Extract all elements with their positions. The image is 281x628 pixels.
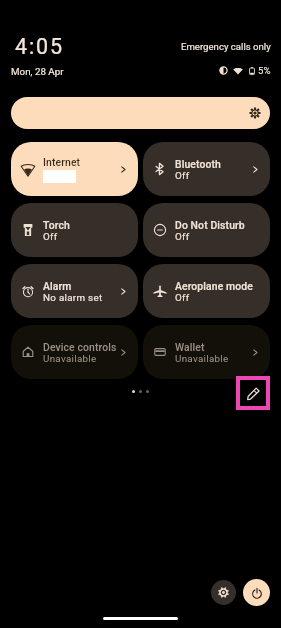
staticText: Emergency calls only [181, 41, 271, 52]
staticText: Off [175, 231, 190, 242]
staticText: Off [175, 292, 190, 303]
button[interactable]: Wallet [143, 325, 270, 379]
staticText: Do Not Disturb [175, 219, 245, 231]
button[interactable]: Bluetooth [143, 142, 270, 196]
button[interactable]: Device controls [11, 325, 138, 379]
button[interactable]: Power [243, 579, 270, 606]
staticText: Wallet [175, 341, 205, 353]
staticText: Mon, 28 Apr [11, 66, 64, 77]
button[interactable]: Edit tiles [240, 380, 266, 406]
staticText: Unavailable [43, 353, 97, 364]
button[interactable]: Aeroplane mode [143, 264, 270, 318]
staticText: Alarm [43, 280, 72, 292]
staticText: Torch [43, 219, 70, 231]
staticText: Internet [43, 156, 81, 168]
staticText: Off [175, 170, 190, 181]
staticText: 5% [258, 65, 271, 76]
button[interactable]: Settings [211, 580, 236, 605]
staticText: 4:05 [15, 34, 65, 59]
staticText: Unavailable [175, 353, 229, 364]
button[interactable]: Internet [11, 142, 138, 196]
button[interactable]: Do Not Disturb [143, 203, 270, 257]
staticText: Off [43, 231, 58, 242]
staticText: Device controls [43, 341, 117, 353]
button[interactable]: Alarm [11, 264, 138, 318]
button[interactable]: Brightness [11, 97, 270, 129]
staticText: No alarm set [43, 292, 103, 303]
staticText: Aeroplane mode [175, 280, 253, 292]
staticText: Bluetooth [175, 158, 221, 170]
button[interactable]: Torch [11, 203, 138, 257]
